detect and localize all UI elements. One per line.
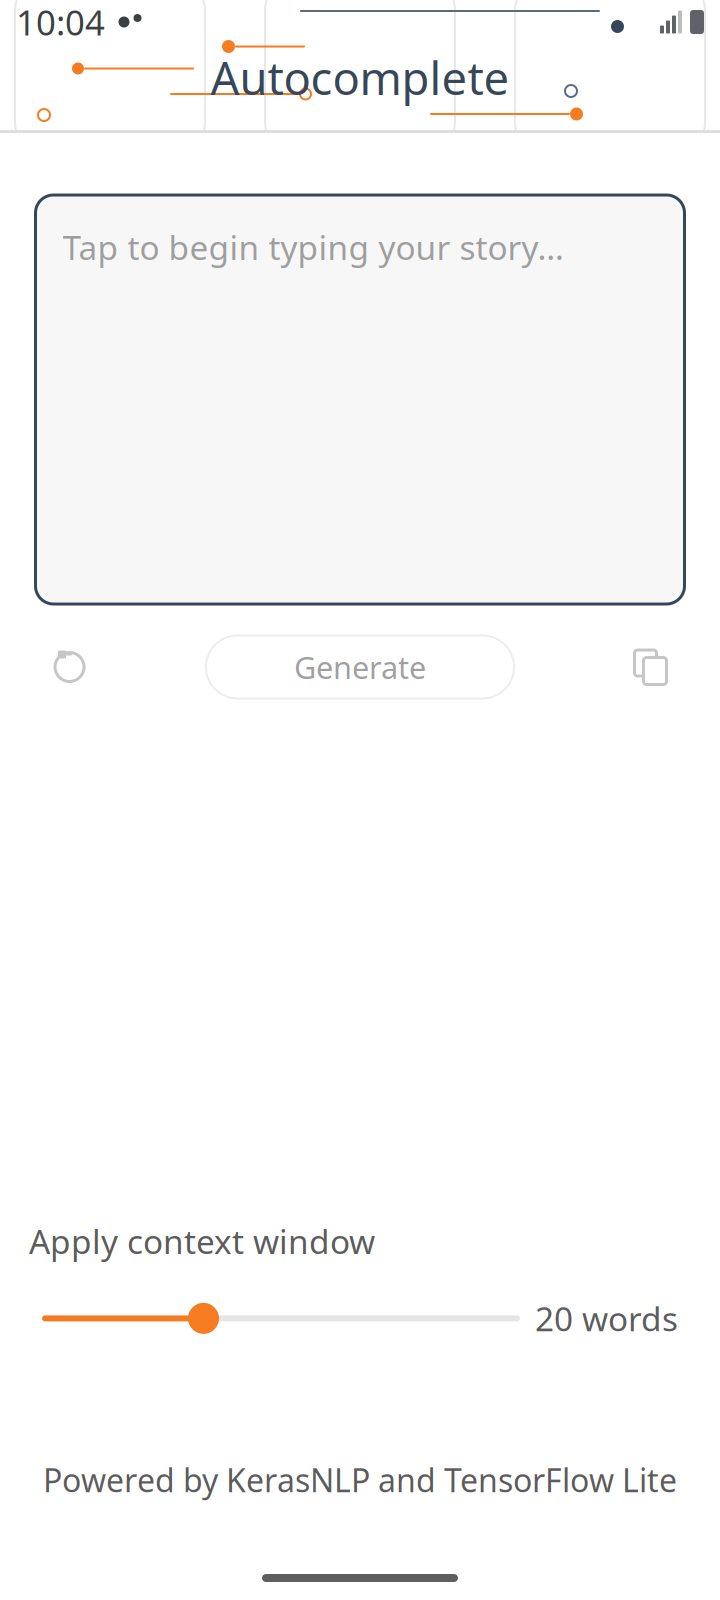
staticText: Autocomplete: [210, 47, 509, 108]
button[interactable]: Generate: [206, 635, 514, 698]
button[interactable]: Tap to begin typing your story…: [35, 195, 684, 604]
button[interactable]: Copy: [616, 633, 684, 701]
staticText: Apply context window: [29, 1219, 375, 1263]
button[interactable]: Reset: [35, 633, 103, 701]
staticText: 10:04: [16, 0, 105, 45]
staticText: 20 words: [535, 1296, 678, 1340]
staticText: Powered by KerasNLP and TensorFlow Lite: [43, 1458, 677, 1501]
staticText: Tap to begin typing your story…: [62, 225, 563, 269]
staticText: Generate: [294, 647, 426, 687]
